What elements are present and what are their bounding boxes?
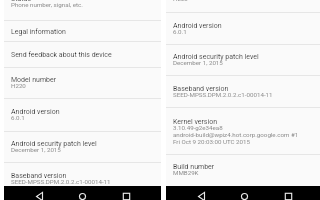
button[interactable]: Back	[33, 190, 46, 200]
button[interactable]: Android security patch level	[166, 45, 320, 75]
button[interactable]: Model number	[166, 0, 320, 12]
staticText: Phone number, signal, etc.	[11, 1, 83, 8]
button[interactable]: Baseband version	[166, 76, 320, 107]
staticText: Android version	[173, 22, 222, 30]
staticText: 6.0.1	[173, 28, 187, 35]
button[interactable]: Home	[76, 190, 89, 200]
staticText: Android version	[11, 108, 60, 116]
button[interactable]: Status	[4, 0, 161, 20]
button[interactable]: Back	[195, 190, 208, 200]
button[interactable]: Build number	[166, 155, 320, 186]
button[interactable]: Android security patch level	[4, 132, 161, 163]
button[interactable]: Android version	[4, 99, 161, 131]
staticText: SEED-MPSS.DPM.2.0.2.c1-00014-11	[11, 178, 111, 185]
button[interactable]: Kernel version	[166, 108, 320, 154]
staticText: android-build@wpiz4.hot.corp.google.com …	[173, 131, 299, 138]
staticText: December 1, 2015	[11, 146, 61, 153]
button[interactable]: Home	[238, 190, 251, 200]
button[interactable]: Android version	[166, 13, 320, 44]
staticText: H220	[11, 82, 26, 89]
button[interactable]: Send feedback about this device	[4, 42, 161, 67]
staticText: Android security patch level	[11, 140, 97, 148]
button[interactable]: Baseband version	[4, 163, 161, 194]
button[interactable]: Model number	[4, 68, 161, 98]
staticText: Legal information	[11, 28, 66, 36]
staticText: Android security patch level	[173, 53, 259, 61]
staticText: Build number	[173, 163, 215, 171]
staticText: Kernel version	[173, 118, 218, 126]
staticText: Send feedback about this device	[11, 51, 112, 59]
staticText: MMB29K	[173, 169, 199, 176]
staticText: H220	[173, 0, 188, 2]
staticText: Status	[11, 0, 32, 3]
button[interactable]: Recents	[120, 190, 133, 200]
button[interactable]: Recents	[282, 190, 295, 200]
staticText: SEED-MPSS.DPM.2.0.2.c1-00014-11	[173, 91, 273, 98]
staticText: December 1, 2015	[173, 59, 223, 66]
staticText: 3.10.49-g2e34ea8	[173, 124, 223, 131]
staticText: Fri Oct 9 20:03:00 UTC 2015	[173, 138, 251, 145]
staticText: Baseband version	[173, 85, 229, 93]
staticText: 6.0.1	[11, 114, 25, 121]
button[interactable]: Legal information	[4, 21, 161, 42]
staticText: Model number	[11, 76, 57, 84]
staticText: Baseband version	[11, 172, 67, 180]
